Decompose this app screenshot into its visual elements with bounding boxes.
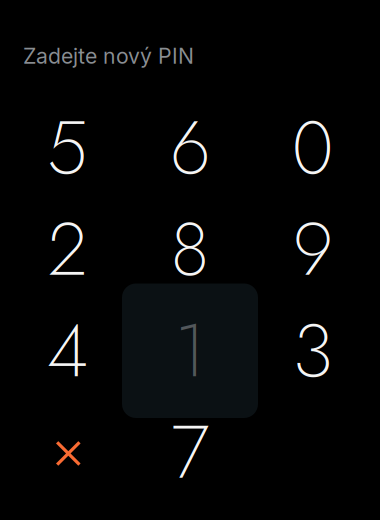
staticText: 4 bbox=[47, 298, 88, 404]
staticText: 8 bbox=[170, 196, 209, 302]
button[interactable]: Delete bbox=[6, 401, 129, 503]
staticText: 6 bbox=[170, 95, 210, 201]
button[interactable]: 6 bbox=[129, 97, 251, 198]
staticText: 5 bbox=[47, 95, 88, 201]
button[interactable]: 7 bbox=[129, 401, 251, 503]
staticText: 0 bbox=[292, 95, 334, 201]
button[interactable]: 8 bbox=[129, 198, 251, 300]
staticText: 9 bbox=[293, 196, 333, 302]
staticText: 1 bbox=[174, 298, 205, 404]
button[interactable]: 3 bbox=[251, 300, 374, 401]
staticText: 3 bbox=[293, 298, 333, 404]
button[interactable]: 0 bbox=[251, 97, 374, 198]
staticText: Zadejte nový PIN bbox=[23, 43, 194, 69]
staticText: 2 bbox=[48, 196, 87, 302]
button[interactable]: 5 bbox=[6, 97, 129, 198]
button[interactable]: 1 bbox=[129, 300, 251, 401]
button[interactable]: 4 bbox=[6, 300, 129, 401]
button[interactable]: 2 bbox=[6, 198, 129, 300]
button[interactable]: 9 bbox=[251, 198, 374, 300]
staticText: 7 bbox=[171, 399, 209, 505]
